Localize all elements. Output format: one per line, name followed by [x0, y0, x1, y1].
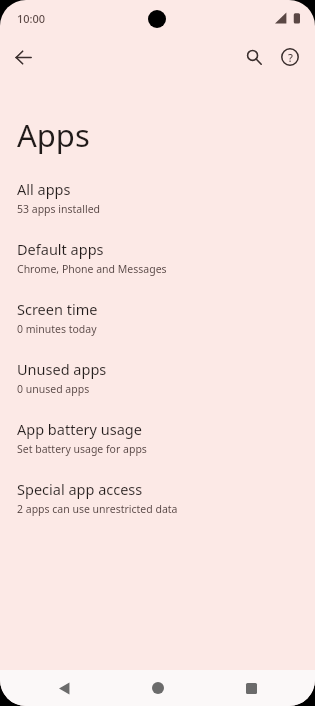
- staticText: Apps: [17, 114, 90, 156]
- staticText: All apps: [17, 179, 71, 199]
- button[interactable]: Back: [34, 670, 94, 706]
- button[interactable]: Search: [236, 39, 272, 75]
- staticText: 0 minutes today: [17, 322, 97, 336]
- button[interactable]: Screen time: [0, 294, 315, 354]
- staticText: Special app access: [17, 479, 143, 499]
- staticText: Chrome, Phone and Messages: [17, 262, 167, 276]
- staticText: Unused apps: [17, 359, 107, 379]
- staticText: Default apps: [17, 239, 104, 259]
- button[interactable]: Special app access: [0, 474, 315, 534]
- button[interactable]: Help: [272, 39, 308, 75]
- staticText: ?: [288, 50, 293, 65]
- button[interactable]: All apps: [0, 174, 315, 234]
- staticText: 2 apps can use unrestricted data: [17, 502, 178, 516]
- staticText: 10:00: [17, 11, 46, 26]
- staticText: 0 unused apps: [17, 382, 90, 396]
- button[interactable]: Recent apps: [221, 670, 281, 706]
- staticText: Set battery usage for apps: [17, 442, 147, 456]
- button[interactable]: App battery usage: [0, 414, 315, 474]
- staticText: Screen time: [17, 299, 98, 319]
- staticText: App battery usage: [17, 419, 142, 439]
- button[interactable]: Home: [128, 670, 188, 706]
- button[interactable]: Default apps: [0, 234, 315, 294]
- staticText: 53 apps installed: [17, 202, 101, 216]
- button[interactable]: Unused apps: [0, 354, 315, 414]
- button[interactable]: Back: [5, 39, 41, 75]
